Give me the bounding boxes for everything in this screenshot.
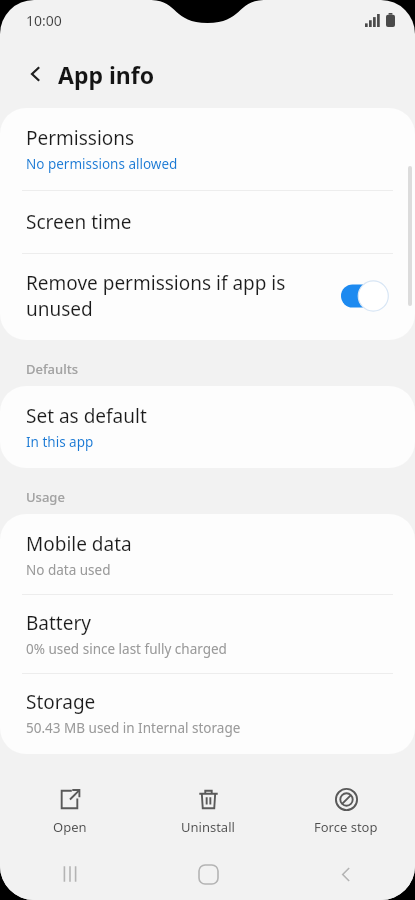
- staticText: 50.43 MB used in Internal storage: [26, 719, 241, 737]
- button[interactable]: Uninstall: [139, 776, 277, 848]
- staticText: Screen time: [26, 209, 132, 235]
- button[interactable]: Open: [0, 776, 139, 848]
- staticText: Mobile data: [26, 531, 132, 557]
- button[interactable]: Permissions: [0, 108, 415, 190]
- staticText: No permissions allowed: [26, 155, 178, 173]
- button[interactable]: Home: [139, 848, 277, 900]
- staticText: Force stop: [314, 818, 378, 836]
- button[interactable]: Screen time: [0, 191, 415, 253]
- staticText: Battery: [26, 610, 91, 636]
- staticText: Uninstall: [181, 818, 235, 836]
- button[interactable]: Battery: [0, 595, 415, 673]
- button[interactable]: Recents: [0, 848, 139, 900]
- staticText: 0% used since last fully charged: [26, 640, 227, 658]
- staticText: In this app: [26, 433, 94, 451]
- button[interactable]: App details in store: [0, 778, 415, 844]
- staticText: Usage: [26, 488, 65, 506]
- staticText: App details in store: [26, 798, 198, 824]
- button[interactable]: Mobile data: [0, 514, 415, 594]
- staticText: Open: [53, 818, 87, 836]
- button[interactable]: Back: [14, 52, 58, 96]
- staticText: Set as default: [26, 403, 147, 429]
- staticText: No data used: [26, 561, 111, 579]
- staticText: Defaults: [26, 360, 79, 378]
- button[interactable]: Remove permissions if app is unused: [0, 254, 415, 340]
- button[interactable]: Remove permissions toggle: [341, 280, 393, 312]
- button[interactable]: Force stop: [277, 776, 415, 848]
- staticText: Remove permissions if app is unused: [26, 270, 325, 322]
- staticText: App info: [58, 59, 155, 90]
- button[interactable]: Back: [277, 848, 415, 900]
- staticText: Permissions: [26, 125, 135, 151]
- staticText: Storage: [26, 689, 96, 715]
- button[interactable]: Set as default: [0, 386, 415, 468]
- button[interactable]: Storage: [0, 674, 415, 754]
- staticText: 10:00: [26, 11, 62, 30]
